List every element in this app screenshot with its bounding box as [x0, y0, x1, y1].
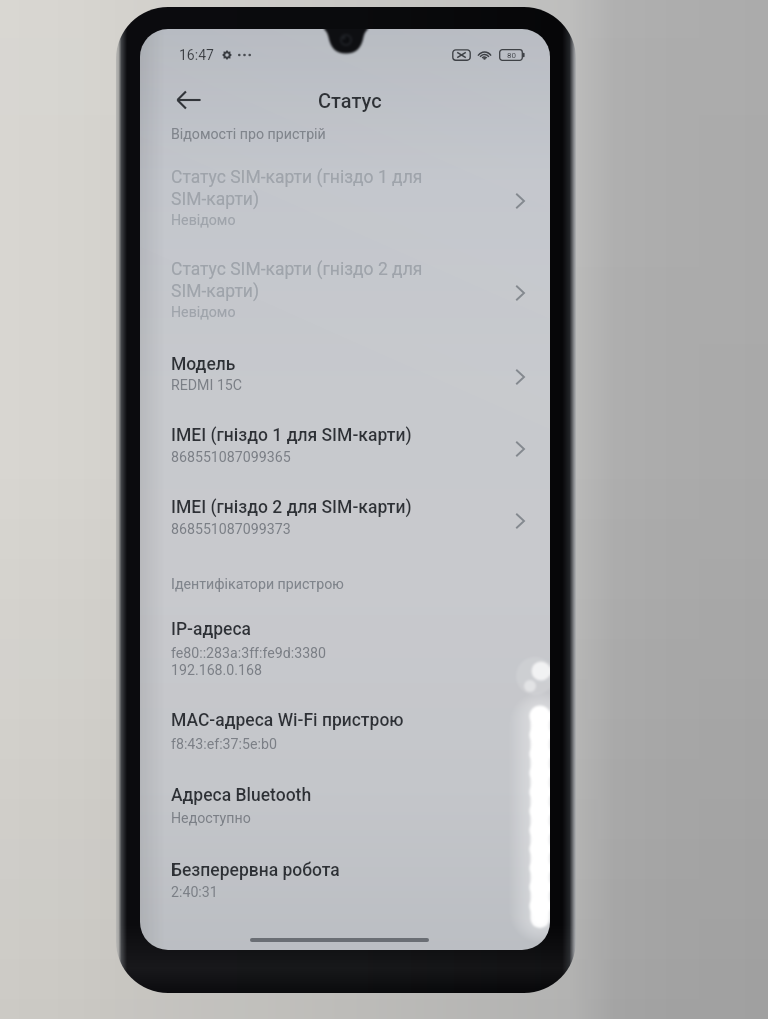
staticText: Статус [318, 89, 382, 112]
staticText: REDMI 15C [171, 377, 243, 394]
button[interactable]: Back [172, 83, 206, 117]
staticText: IMEI (гніздо 2 для SIM-карти) [171, 497, 412, 518]
staticText: Статус SIM-карти (гніздо 1 для [171, 167, 423, 188]
staticText: 80 [507, 51, 516, 60]
staticText: 868551087099373 [171, 521, 291, 538]
button[interactable]: MAC-адреса Wi-Fi пристрою, f8:43:ef:37:5… [140, 699, 550, 761]
staticText: 868551087099365 [171, 449, 291, 466]
button[interactable]: IMEI (гніздо 1 для SIM-карти), 868551087… [140, 415, 550, 477]
staticText: Відомості про пристрій [171, 126, 326, 143]
button[interactable]: IP-адреса, fe80::283a:3ff:fe9d:3380, 192… [140, 607, 550, 687]
button[interactable]: Home [250, 938, 429, 942]
staticText: 2:40:31 [171, 884, 218, 901]
button[interactable]: Безперервна робота, 2:40:31 [140, 849, 550, 911]
button[interactable]: Модель, REDMI 15C [140, 341, 550, 407]
staticText: f8:43:ef:37:5e:b0 [171, 736, 277, 753]
staticText: MAC-адреса Wi-Fi пристрою [171, 710, 404, 731]
staticText: Ідентифікатори пристрою [171, 576, 344, 593]
staticText: 192.168.0.168 [171, 662, 262, 679]
button[interactable]: Статус SIM-карти (гніздо 1 для SIM-карти… [140, 157, 550, 237]
staticText: Модель [171, 354, 236, 375]
button[interactable]: IMEI (гніздо 2 для SIM-карти), 868551087… [140, 487, 550, 549]
staticText: 16:47 [179, 47, 214, 63]
staticText: Невідомо [171, 212, 236, 229]
staticText: Адреса Bluetooth [171, 785, 312, 806]
staticText: SIM-карти) [171, 189, 259, 210]
staticText: Статус SIM-карти (гніздо 2 для [171, 259, 423, 280]
button[interactable]: Адреса Bluetooth, Недоступно [140, 774, 550, 836]
button[interactable]: Статус SIM-карти (гніздо 2 для SIM-карти… [140, 249, 550, 329]
staticText: fe80::283a:3ff:fe9d:3380 [171, 645, 327, 662]
staticText: Невідомо [171, 304, 236, 321]
staticText: SIM-карти) [171, 281, 259, 302]
staticText: IMEI (гніздо 1 для SIM-карти) [171, 425, 412, 446]
staticText: IP-адреса [171, 619, 252, 640]
staticText: Недоступно [171, 810, 251, 827]
staticText: Безперервна робота [171, 860, 340, 881]
